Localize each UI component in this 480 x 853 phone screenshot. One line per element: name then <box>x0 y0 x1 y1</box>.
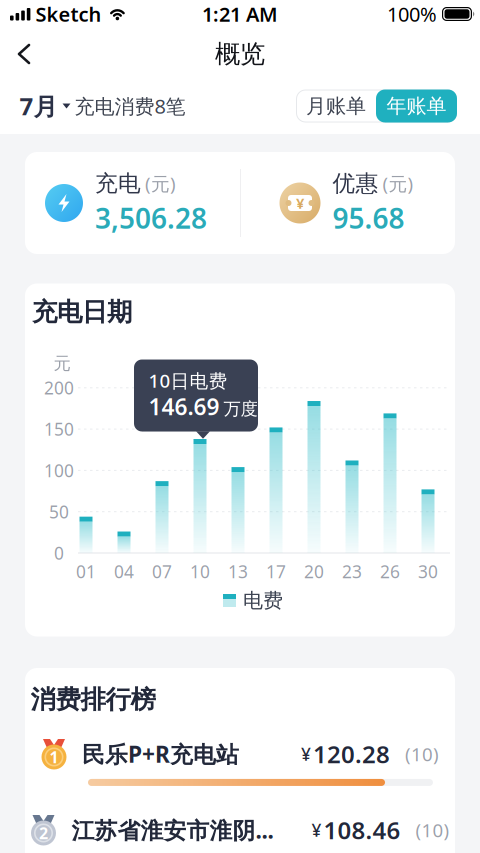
staticText: 04 <box>114 560 134 583</box>
staticText: 108.46 <box>323 814 400 846</box>
button[interactable]: 7月 <box>19 90 70 122</box>
staticText: 17 <box>266 560 286 583</box>
staticText: (10) <box>405 742 439 766</box>
staticText: 概览 <box>215 38 265 69</box>
staticText: 0 <box>54 541 64 564</box>
button[interactable]: 年账单 <box>376 89 457 122</box>
staticText: (10) <box>415 818 449 842</box>
staticText: (元) <box>382 171 413 196</box>
staticText: 万度 <box>223 398 257 420</box>
staticText: 100% <box>387 1 437 27</box>
staticText: 元 <box>53 353 70 374</box>
staticText: 7月 <box>19 90 57 122</box>
staticText: 消费排行榜 <box>30 684 155 715</box>
staticText: 电费 <box>243 588 283 613</box>
staticText: 150 <box>44 418 74 441</box>
staticText: ¥ <box>296 193 304 213</box>
staticText: 1 <box>49 746 58 768</box>
staticText: 江苏省淮安市淮阴... <box>71 815 273 845</box>
staticText: 年账单 <box>386 94 446 118</box>
staticText: 2 <box>39 822 48 844</box>
staticText: 100 <box>44 459 74 482</box>
staticText: 50 <box>49 500 69 523</box>
staticText: 充电 <box>95 169 141 197</box>
staticText: 优惠 <box>332 169 378 197</box>
button[interactable]: 月账单 <box>296 89 376 122</box>
button[interactable]: 1 <box>41 738 439 786</box>
staticText: Sketch <box>35 1 101 27</box>
staticText: 200 <box>44 376 74 399</box>
staticText: 95.68 <box>332 199 404 236</box>
staticText: ¥ <box>301 742 311 765</box>
staticText: 146.69 <box>148 391 219 421</box>
button[interactable]: Back <box>7 35 47 73</box>
staticText: 07 <box>152 560 172 583</box>
staticText: ¥ <box>311 818 321 841</box>
staticText: 26 <box>380 560 400 583</box>
staticText: 01 <box>76 560 96 583</box>
staticText: 10日电费 <box>148 368 227 393</box>
staticText: 3,506.28 <box>95 199 207 236</box>
button[interactable]: 2 <box>41 814 439 846</box>
staticText: 13 <box>228 560 248 583</box>
staticText: (元) <box>145 171 176 196</box>
staticText: 20 <box>304 560 324 583</box>
staticText: 1:21 AM <box>202 1 278 27</box>
staticText: 民乐P+R充电站 <box>82 739 239 769</box>
staticText: 月账单 <box>306 94 366 118</box>
staticText: 23 <box>342 560 362 583</box>
staticText: 120.28 <box>313 738 390 770</box>
staticText: 30 <box>418 560 438 583</box>
staticText: 10 <box>190 560 210 583</box>
staticText: 充电日期 <box>32 296 132 327</box>
staticText: 充电消费8笔 <box>74 93 185 119</box>
